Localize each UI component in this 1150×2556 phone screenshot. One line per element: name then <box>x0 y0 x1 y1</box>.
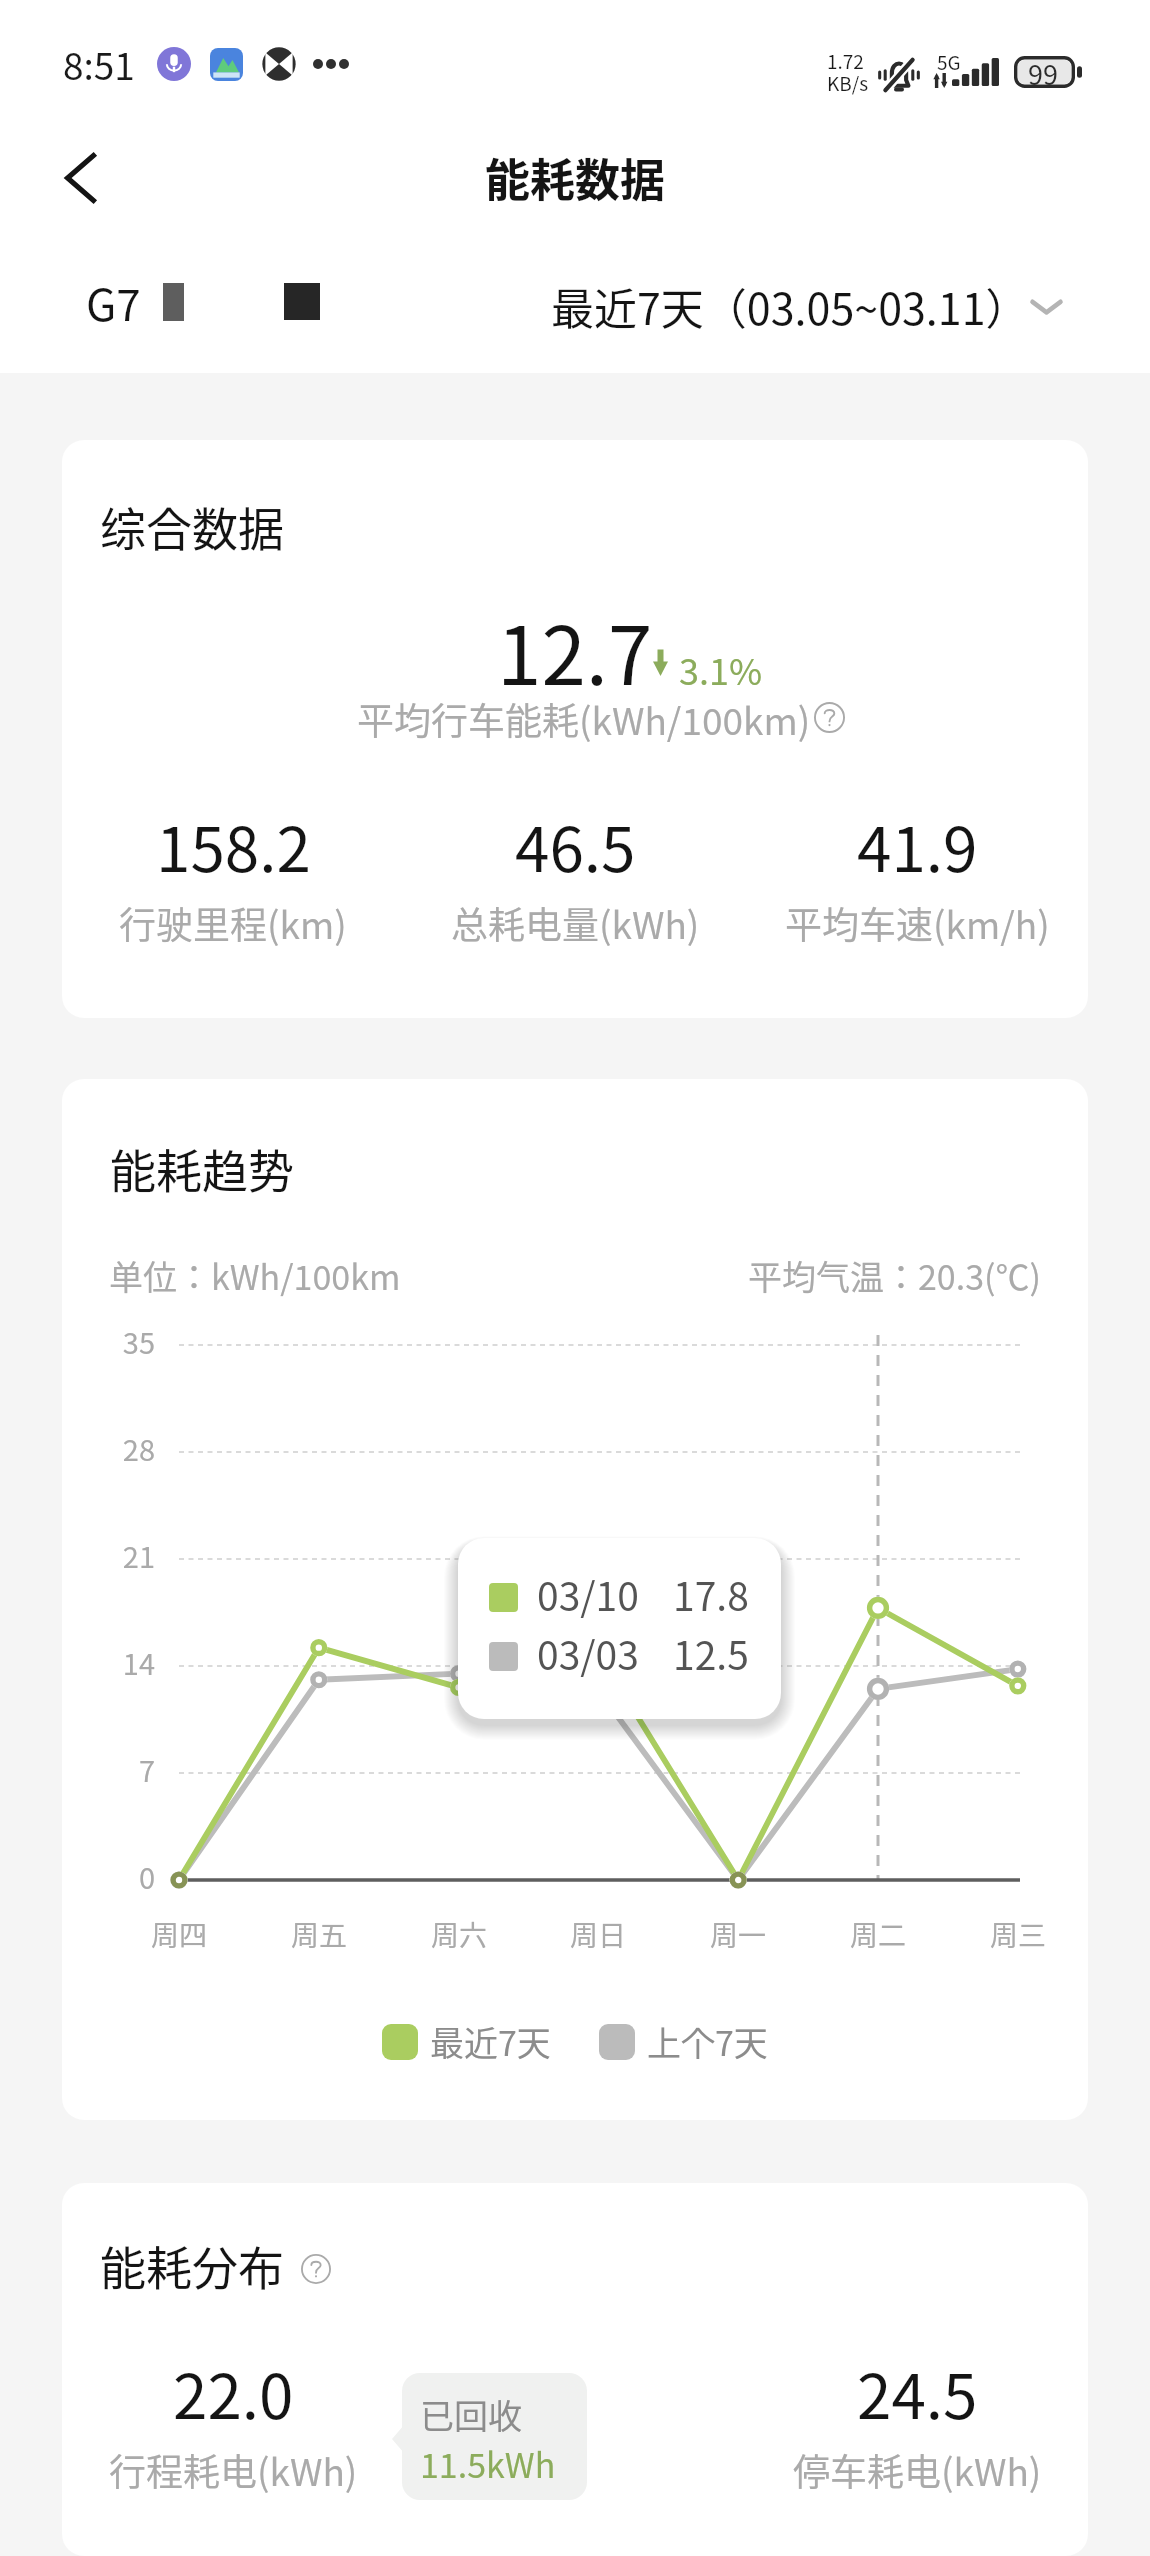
staticText: KB/s <box>827 69 869 97</box>
staticText: 周六 <box>399 1914 519 1955</box>
button[interactable]: 24.5 <box>746 2347 1088 2497</box>
staticText: 上个7天 <box>647 2017 768 2066</box>
staticText: 03/03 <box>537 1625 639 1681</box>
staticText: 行程耗电(kWh) <box>109 2443 358 2497</box>
staticText: 周日 <box>538 1914 658 1955</box>
button[interactable]: Back <box>42 128 124 248</box>
button[interactable]: 46.5 <box>404 800 746 950</box>
staticText: 8:51 <box>63 37 135 91</box>
staticText: 最近7天（03.05~03.11） <box>551 275 1029 337</box>
button[interactable]: 158.2 <box>62 800 404 950</box>
staticText: G7 <box>86 270 141 334</box>
button[interactable]: 22.0 <box>62 2347 404 2497</box>
staticText: 11.5kWh <box>420 2439 556 2488</box>
staticText: 14 <box>75 1641 155 1683</box>
staticText: 周四 <box>119 1914 239 1955</box>
staticText: 综合数据 <box>100 493 284 560</box>
staticText: 28 <box>75 1427 155 1469</box>
staticText: 12.5 <box>673 1625 749 1681</box>
staticText: 41.9 <box>857 800 978 890</box>
staticText: 5G <box>937 48 961 76</box>
staticText: 单位：kWh/100km <box>109 1251 401 1300</box>
staticText: 1.72 <box>827 47 864 75</box>
button[interactable]: G7 <box>86 270 184 334</box>
staticText: 158.2 <box>156 800 311 890</box>
staticText: 平均气温：20.3(℃) <box>748 1251 1042 1300</box>
staticText: 周三 <box>958 1914 1078 1955</box>
staticText: 能耗分布 <box>100 2232 284 2299</box>
staticText: 周五 <box>259 1914 379 1955</box>
staticText: 35 <box>75 1320 155 1362</box>
button[interactable]: Info <box>814 702 845 733</box>
button[interactable]: 最近7天（03.05~03.11） <box>551 275 1063 337</box>
staticText: 能耗数据 <box>485 145 666 210</box>
staticText: 周二 <box>818 1914 938 1955</box>
staticText: 停车耗电(kWh) <box>793 2443 1042 2497</box>
staticText: 已回收 <box>420 2390 522 2439</box>
staticText: 平均行车能耗(kWh/100km) <box>357 692 811 746</box>
staticText: 总耗电量(kWh) <box>451 896 700 950</box>
staticText: 22.0 <box>173 2347 294 2437</box>
button[interactable]: 41.9 <box>746 800 1088 950</box>
staticText: 周一 <box>678 1914 798 1955</box>
staticText: 最近7天 <box>430 2017 551 2066</box>
staticText: 46.5 <box>515 800 636 890</box>
staticText: 03/10 <box>537 1566 639 1622</box>
staticText: 24.5 <box>857 2347 978 2437</box>
button[interactable]: 最近7天 <box>382 2017 551 2066</box>
staticText: 0 <box>75 1855 155 1897</box>
staticText: 12.7 <box>497 592 653 708</box>
staticText: 99 <box>1028 54 1058 93</box>
staticText: 能耗趋势 <box>110 1135 294 1202</box>
staticText: 21 <box>75 1534 155 1576</box>
button[interactable]: Info <box>301 2254 331 2284</box>
staticText: 17.8 <box>673 1566 749 1622</box>
staticText: 3.1% <box>679 643 763 695</box>
staticText: 行驶里程(km) <box>119 896 347 950</box>
staticText: 7 <box>75 1748 155 1790</box>
staticText: 平均车速(km/h) <box>785 896 1050 950</box>
button[interactable]: 上个7天 <box>599 2017 768 2066</box>
